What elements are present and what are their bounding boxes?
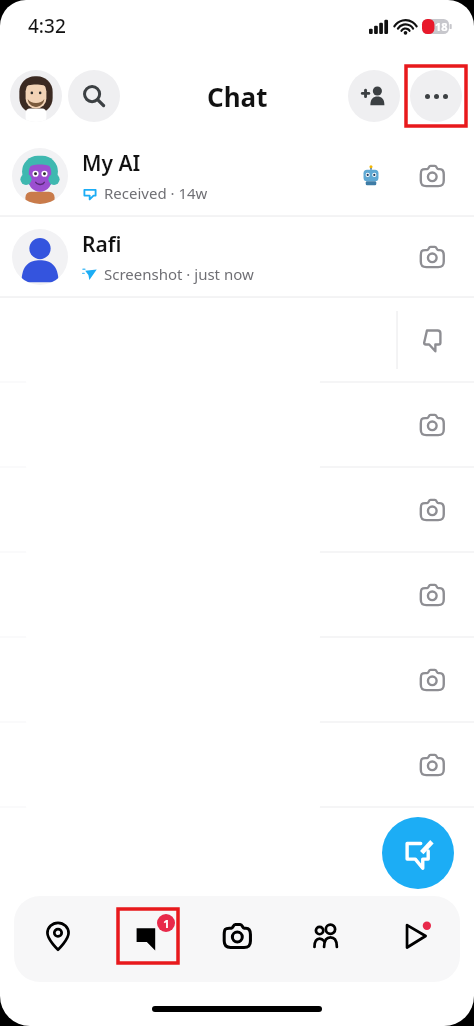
button[interactable]: Map (27, 908, 89, 964)
button[interactable]: Chat (410, 318, 454, 362)
staticText: 18 (435, 19, 448, 34)
button[interactable]: Send snap (410, 235, 454, 279)
button[interactable]: Camera (206, 908, 268, 964)
staticText: Screenshot · just now (104, 264, 254, 284)
staticText: My AI (82, 149, 141, 178)
button[interactable]: Send snap (0, 723, 474, 807)
button[interactable]: Search (68, 70, 120, 122)
button[interactable]: Send snap (410, 743, 454, 787)
staticText: Rafi (82, 230, 122, 259)
button[interactable]: Profile (10, 70, 62, 122)
button[interactable]: Send snap (0, 383, 474, 467)
button[interactable]: Send snap (410, 573, 454, 617)
button[interactable]: Send snap (410, 658, 454, 702)
button[interactable]: My AI (0, 136, 474, 216)
button[interactable]: Friends (295, 908, 357, 964)
button[interactable]: Send snap (410, 488, 454, 532)
button[interactable]: Spotlight (385, 908, 447, 964)
button[interactable]: Add friends (348, 70, 400, 122)
button[interactable]: New chat (382, 817, 454, 889)
staticText: 1 (163, 916, 170, 931)
button[interactable]: More options (410, 70, 462, 122)
staticText: Chat (207, 79, 268, 114)
button[interactable]: Send snap (0, 553, 474, 637)
button[interactable]: Chat (117, 908, 179, 964)
button[interactable]: Send snap (0, 468, 474, 552)
button[interactable]: Chat (0, 298, 474, 382)
staticText: 4:32 (28, 13, 66, 39)
button[interactable]: Rafi (0, 217, 474, 297)
button[interactable]: Send snap (410, 154, 454, 198)
button[interactable]: Send snap (410, 403, 454, 447)
staticText: Received · 14w (104, 183, 208, 203)
button[interactable]: Send snap (0, 638, 474, 722)
